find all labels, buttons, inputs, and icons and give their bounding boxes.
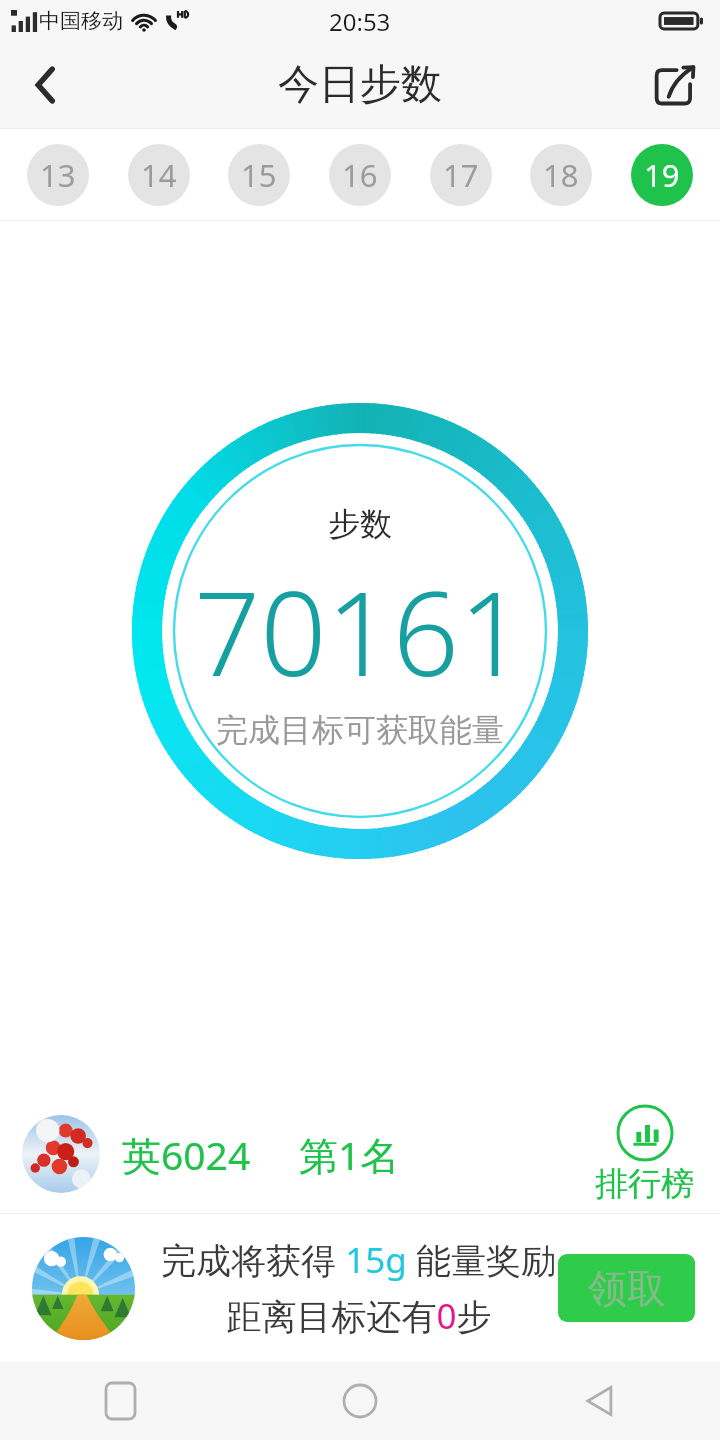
staticText: 第1名 xyxy=(299,1128,400,1181)
staticText: 排行榜 xyxy=(595,1163,694,1205)
staticText: 完成将获得 15g 能量奖励 xyxy=(161,1236,556,1284)
staticText: 14 xyxy=(141,154,177,196)
button[interactable]: 最近任务 xyxy=(0,1362,240,1440)
staticText: 距离目标还有0步 xyxy=(226,1292,492,1340)
staticText: 19 xyxy=(644,154,680,196)
staticText: 步数 xyxy=(328,504,392,544)
staticText: 15 xyxy=(241,154,277,196)
staticText: 今日步数 xyxy=(278,59,442,111)
button[interactable]: 13 xyxy=(27,144,89,206)
staticText: 领取 xyxy=(588,1264,666,1313)
button[interactable]: 英6024 xyxy=(0,1095,720,1213)
button[interactable]: 领取 xyxy=(558,1254,695,1322)
staticText: 16 xyxy=(342,154,378,196)
button[interactable]: 主页 xyxy=(240,1362,480,1440)
staticText: 18 xyxy=(543,154,579,196)
button[interactable]: 14 xyxy=(128,144,190,206)
staticText: 完成目标可获取能量 xyxy=(216,710,504,750)
button[interactable]: 返回 xyxy=(480,1362,720,1440)
button[interactable]: 15 xyxy=(228,144,290,206)
button[interactable]: 16 xyxy=(329,144,391,206)
staticText: 13 xyxy=(40,154,76,196)
button[interactable]: 17 xyxy=(430,144,492,206)
button[interactable]: 返回 xyxy=(0,42,92,128)
staticText: 英6024 xyxy=(122,1128,251,1181)
button[interactable]: 分享 xyxy=(632,42,720,128)
button[interactable]: 18 xyxy=(530,144,592,206)
button[interactable]: 19 xyxy=(631,144,693,206)
staticText: 70161 xyxy=(194,552,526,710)
staticText: 17 xyxy=(443,154,479,196)
staticText: 中国移动 xyxy=(39,8,123,34)
staticText: 20:53 xyxy=(329,5,391,38)
